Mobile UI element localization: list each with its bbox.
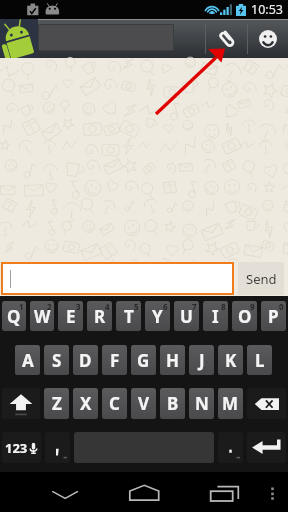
button[interactable]: K [218,345,243,375]
staticText: L [255,349,265,372]
button[interactable]: F [102,345,127,375]
button[interactable]: More options [246,472,288,512]
staticText: W [34,305,51,328]
button[interactable]: P [261,301,286,331]
staticText: P [268,305,279,328]
button[interactable]: W [30,301,54,331]
staticText: 7 [192,301,197,312]
button[interactable]: Emoji [248,19,288,58]
staticText: H [166,349,180,372]
button[interactable]: G [131,345,156,375]
staticText: G [137,349,150,372]
staticText: J [199,349,205,372]
button[interactable]: Q [2,301,26,331]
staticText: S [52,349,62,372]
staticText: 8 [221,301,226,312]
button[interactable]: Comma [45,432,70,463]
button[interactable]: A [15,345,40,375]
button[interactable]: Home [105,472,185,512]
button[interactable]: I [203,301,228,331]
staticText: 6 [163,301,168,312]
staticText: V [138,392,150,415]
button[interactable]: J [189,345,214,375]
button[interactable]: S [44,345,69,375]
staticText: 0 [279,301,284,312]
button[interactable]: V [131,388,156,419]
button[interactable]: D [73,345,98,375]
button[interactable]: Attach [206,19,247,58]
button[interactable]: Backspace [247,388,286,419]
button[interactable]: B [160,388,185,419]
button[interactable]: O [232,301,257,331]
button[interactable]: Send [238,262,284,295]
button[interactable] [3,264,232,293]
button[interactable]: Y [145,301,170,331]
staticText: 4 [105,301,110,312]
staticText: N [195,392,209,415]
staticText: M [222,392,239,415]
staticText: E [66,305,76,328]
button[interactable]: H [160,345,185,375]
button[interactable]: M [218,388,243,419]
staticText: C [109,392,120,415]
button[interactable]: Recent apps [185,472,246,512]
button[interactable]: X [73,388,98,419]
staticText: K [225,349,237,372]
staticText: F [110,349,120,372]
button[interactable]: Open app [0,19,38,58]
staticText: 1 [19,301,24,312]
button[interactable]: Period [218,432,243,463]
staticText: 123 [5,439,28,457]
staticText: R [94,305,106,328]
staticText: I [212,305,219,328]
button[interactable]: Symbols and voice input [2,432,41,463]
staticText: U [180,305,193,328]
button[interactable]: Hide keyboard [0,472,105,512]
button[interactable]: Z [44,388,69,419]
staticText: Y [152,305,163,328]
staticText: 2 [47,301,52,312]
button[interactable]: C [102,388,127,419]
staticText: 9 [250,301,255,312]
button[interactable]: E [58,301,83,331]
staticText: A [22,349,34,372]
button[interactable]: T [116,301,141,331]
button[interactable]: R [87,301,112,331]
button[interactable]: U [174,301,199,331]
staticText: D [79,349,92,372]
button[interactable]: N [189,388,214,419]
staticText: 3 [76,301,81,312]
button[interactable]: Shift [2,388,40,419]
staticText: Send [246,270,277,288]
staticText: O [238,305,252,328]
staticText: 10:53 [251,1,283,18]
staticText: T [124,305,134,328]
button[interactable]: L [247,345,272,375]
staticText: 5 [134,301,139,312]
button[interactable]: Enter [247,432,286,463]
staticText: Z [52,392,62,415]
staticText: B [167,392,179,415]
staticText: Q [7,305,21,328]
staticText: X [80,392,92,415]
